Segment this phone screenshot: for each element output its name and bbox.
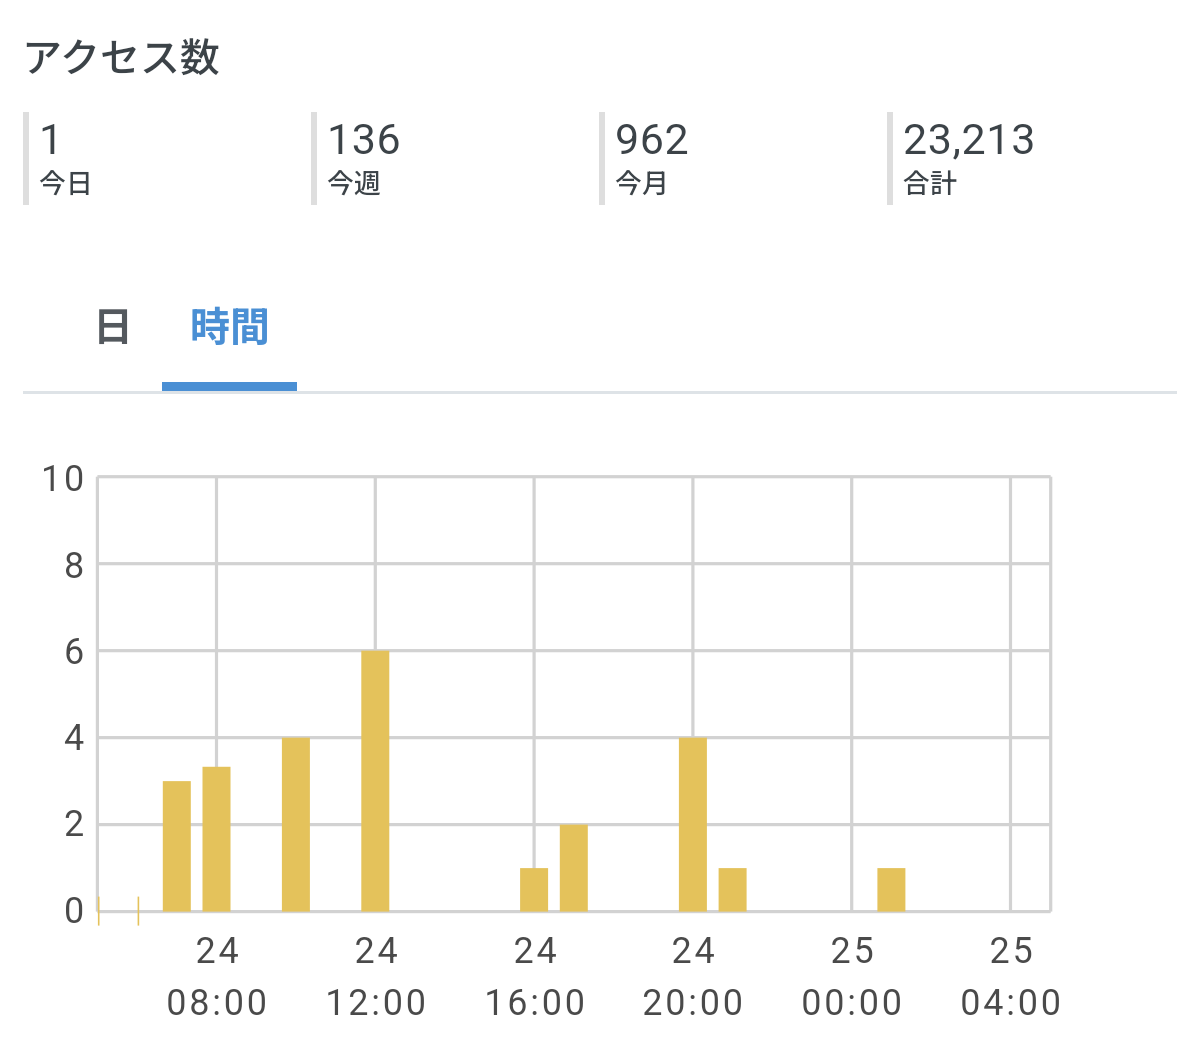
- staticText: 24: [513, 930, 560, 972]
- button[interactable]: 日: [68, 291, 158, 391]
- staticText: 1: [39, 114, 64, 164]
- staticText: 23,213: [903, 114, 1036, 164]
- staticText: 6: [64, 631, 88, 673]
- staticText: 20:00: [642, 982, 746, 1024]
- staticText: 10: [41, 458, 88, 500]
- button[interactable]: 136: [311, 112, 599, 205]
- button[interactable]: 962: [599, 112, 887, 205]
- staticText: 0: [64, 890, 88, 932]
- staticText: 8: [64, 545, 88, 587]
- staticText: 2: [64, 803, 88, 845]
- staticText: 今週: [327, 162, 381, 201]
- staticText: 08:00: [166, 982, 270, 1024]
- staticText: 04:00: [960, 982, 1064, 1024]
- staticText: 今月: [615, 162, 669, 201]
- staticText: 4: [64, 717, 88, 759]
- button[interactable]: 時間: [162, 291, 297, 391]
- staticText: アクセス数: [22, 26, 220, 84]
- staticText: 24: [195, 930, 242, 972]
- staticText: 今日: [39, 162, 93, 201]
- staticText: 24: [671, 930, 718, 972]
- staticText: 136: [327, 114, 402, 164]
- staticText: 00:00: [801, 982, 905, 1024]
- staticText: 日: [93, 295, 133, 353]
- staticText: 合計: [903, 162, 957, 201]
- staticText: 時間: [190, 295, 270, 353]
- staticText: 12:00: [325, 982, 429, 1024]
- button[interactable]: 1: [23, 112, 311, 205]
- staticText: 25: [989, 930, 1036, 972]
- staticText: 25: [830, 930, 877, 972]
- button[interactable]: 23,213: [887, 112, 1175, 205]
- staticText: 16:00: [484, 982, 588, 1024]
- staticText: 962: [615, 114, 690, 164]
- staticText: 24: [354, 930, 401, 972]
